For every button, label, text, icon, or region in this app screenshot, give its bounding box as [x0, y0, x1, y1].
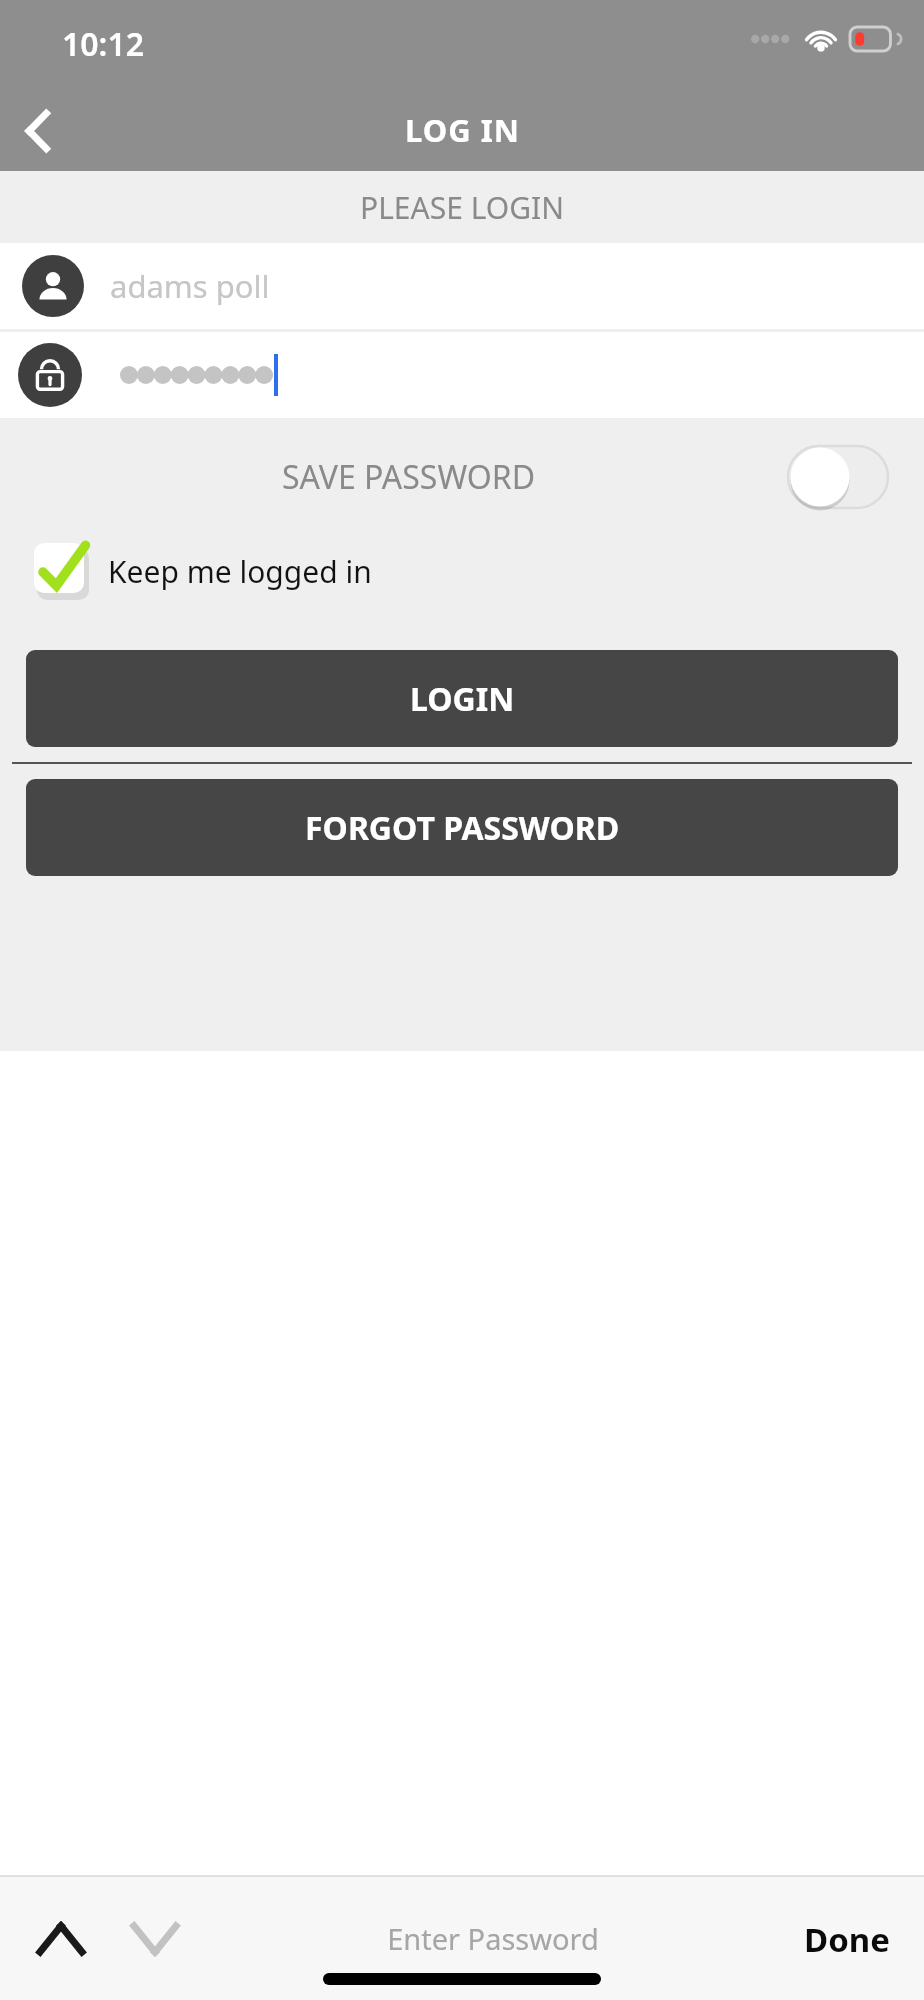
button[interactable]: FORGOT PASSWORD — [26, 779, 898, 876]
button[interactable]: Done — [794, 1902, 900, 1976]
staticText: Enter Password — [387, 1919, 599, 1958]
staticText: 10:12 — [62, 22, 145, 66]
button[interactable] — [0, 332, 924, 418]
staticText: PLEASE LOGIN — [360, 187, 565, 228]
staticText: Done — [804, 1917, 890, 1962]
staticText: SAVE PASSWORD — [282, 455, 536, 499]
button[interactable]: Keep me logged in — [34, 536, 372, 606]
staticText: LOGIN — [410, 677, 515, 721]
staticText: FORGOT PASSWORD — [305, 806, 620, 850]
button[interactable]: SAVE PASSWORD — [0, 418, 924, 536]
button[interactable]: LOGIN — [26, 650, 898, 747]
staticText: adams poll — [110, 265, 270, 307]
button[interactable]: adams poll — [0, 243, 924, 329]
staticText: Keep me logged in — [108, 551, 372, 592]
staticText: LOG IN — [405, 109, 520, 151]
button[interactable]: Previous field — [24, 1902, 98, 1976]
button[interactable]: Next field — [118, 1902, 192, 1976]
button[interactable]: Back — [6, 99, 70, 163]
